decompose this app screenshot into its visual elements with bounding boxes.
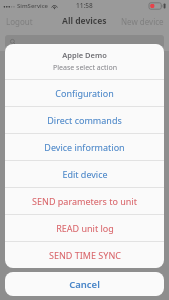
button[interactable]: Logout — [0, 13, 39, 30]
staticText: All devices — [62, 15, 107, 27]
button[interactable]: SEND parameters to unit — [5, 188, 164, 214]
staticText: Apple Demo — [62, 50, 107, 60]
staticText: SEND TIME SYNC — [49, 249, 121, 261]
staticText: New device — [121, 16, 164, 27]
staticText: READ unit log — [56, 222, 114, 234]
button[interactable]: Configuration — [5, 80, 164, 106]
button[interactable]: READ unit log — [5, 215, 164, 241]
button[interactable]: Edit device — [5, 161, 164, 187]
staticText: SimService — [17, 2, 49, 10]
button[interactable]: Device information — [5, 134, 164, 160]
button[interactable]: SEND TIME SYNC — [5, 242, 164, 268]
button[interactable]: Direct commands — [5, 107, 164, 133]
staticText: Logout — [6, 16, 33, 27]
staticText: SEND parameters to unit — [32, 195, 137, 207]
button[interactable]: New device — [116, 13, 169, 30]
staticText: Direct commands — [47, 114, 122, 126]
staticText: Edit device — [62, 168, 108, 180]
staticText: 11:58 — [76, 1, 93, 10]
button[interactable]: Cancel — [5, 272, 164, 296]
staticText: Please select action — [53, 63, 117, 73]
staticText: Cancel — [69, 278, 100, 291]
staticText: Configuration — [55, 87, 114, 99]
staticText: Device information — [44, 141, 125, 153]
button[interactable]: Search — [5, 35, 164, 48]
